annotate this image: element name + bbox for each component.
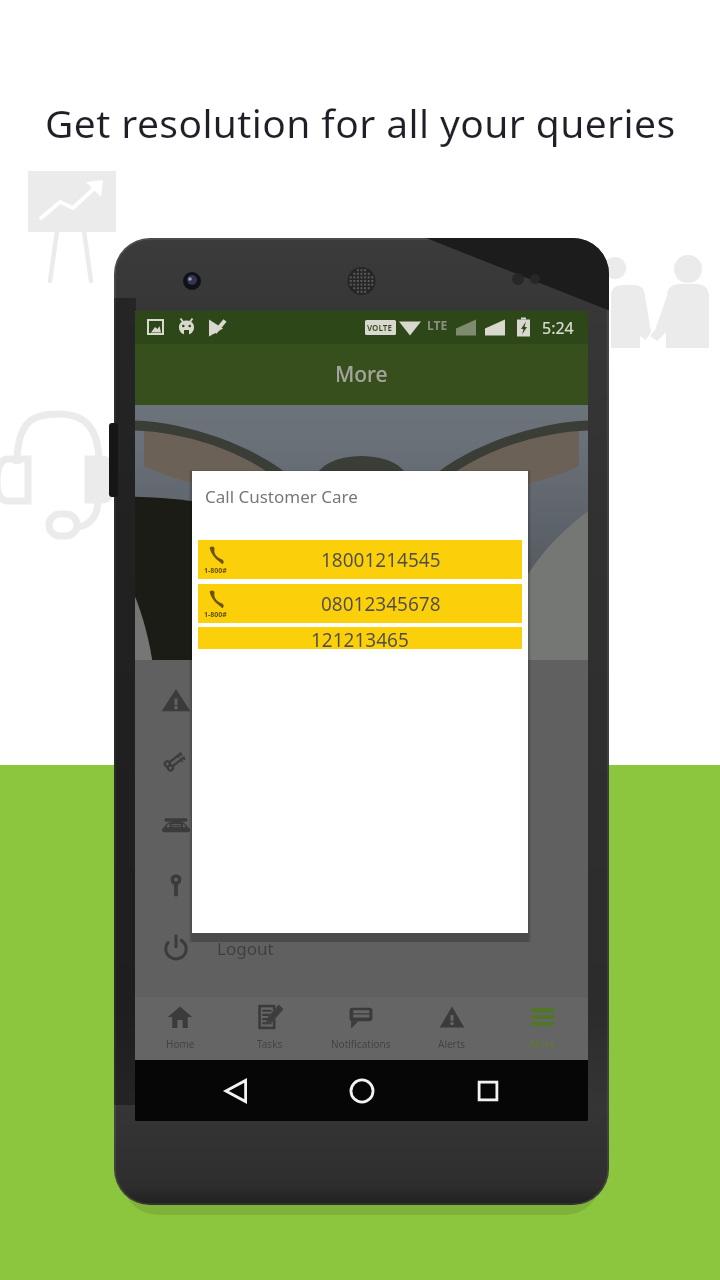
- button[interactable]: Change Password: [135, 855, 588, 917]
- button[interactable]: More: [497, 997, 588, 1060]
- button[interactable]: 1-800#: [198, 540, 522, 579]
- button[interactable]: Notifications: [315, 997, 406, 1060]
- button[interactable]: Tasks: [225, 997, 315, 1060]
- button[interactable]: 121213465: [198, 627, 522, 649]
- staticText: Call Customer Care: [205, 485, 358, 508]
- button[interactable]: Call Customer Care: [135, 793, 588, 855]
- staticText: 1-800#: [204, 610, 227, 620]
- staticText: LTE: [427, 317, 448, 333]
- button[interactable]: Home: [299, 1060, 425, 1121]
- staticText: More: [335, 360, 388, 389]
- button[interactable]: Back: [173, 1060, 299, 1121]
- staticText: 08012345678: [321, 591, 441, 617]
- button[interactable]: 1-800#: [198, 584, 522, 623]
- staticText: Tasks: [257, 1037, 283, 1051]
- staticText: Logout: [217, 937, 274, 960]
- staticText: Home: [166, 1037, 195, 1051]
- staticText: More: [530, 1037, 555, 1051]
- staticText: VOLTE: [367, 322, 392, 333]
- button[interactable]: Home: [135, 997, 225, 1060]
- button[interactable]: Alerts: [406, 997, 497, 1060]
- button[interactable]: Recents: [425, 1060, 551, 1121]
- staticText: 1-800#: [204, 566, 227, 576]
- staticText: Notifications: [331, 1037, 391, 1051]
- staticText: Alerts: [438, 1037, 466, 1051]
- staticText: 121213465: [311, 627, 409, 649]
- button[interactable]: Complaints: [135, 669, 588, 731]
- staticText: 5:24: [542, 317, 574, 339]
- staticText: Get resolution for all your queries: [45, 96, 676, 149]
- button[interactable]: Logout: [135, 917, 588, 979]
- button[interactable]: Services: [135, 731, 588, 793]
- staticText: 18001214545: [321, 547, 441, 573]
